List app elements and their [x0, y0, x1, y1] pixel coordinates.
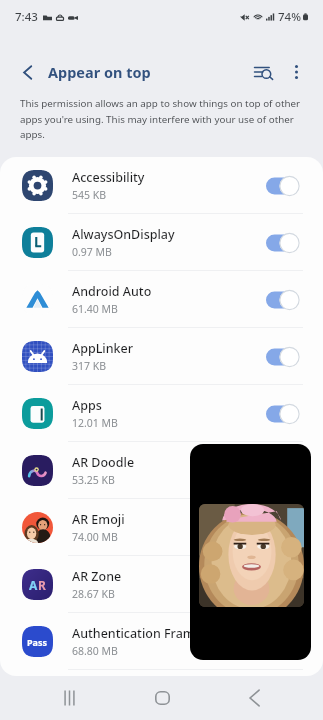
staticText: Android Auto: [72, 283, 152, 300]
button[interactable]: AppLinker: [0, 328, 323, 385]
staticText: AR Emoji: [72, 511, 125, 528]
button[interactable]: Toggle permission: [266, 346, 300, 368]
button[interactable]: Navigate up: [14, 59, 40, 85]
staticText: 0.97 MB: [72, 245, 112, 259]
staticText: 7:43: [15, 9, 38, 25]
button[interactable]: Toggle permission: [266, 403, 300, 425]
staticText: Accessibility: [72, 169, 145, 186]
button[interactable]: Android Auto: [0, 271, 323, 328]
staticText: AppLinker: [72, 340, 134, 357]
staticText: Appear on top: [48, 62, 151, 82]
button[interactable]: AR Doodle: [0, 442, 323, 499]
button[interactable]: Toggle permission: [266, 574, 300, 596]
staticText: 68.80 MB: [72, 644, 118, 658]
staticText: 74%: [278, 9, 301, 25]
button[interactable]: A: [0, 556, 323, 613]
staticText: 12.01 MB: [72, 416, 118, 430]
staticText: 53.25 KB: [72, 473, 115, 487]
button[interactable]: Video call picture in picture: [190, 444, 311, 660]
button[interactable]: Recent apps: [46, 676, 92, 720]
button[interactable]: Toggle permission: [266, 175, 300, 197]
button[interactable]: AlwaysOnDisplay: [0, 214, 323, 271]
staticText: 317 KB: [72, 359, 107, 373]
staticText: Pass: [27, 636, 48, 648]
button[interactable]: Toggle permission: [266, 232, 300, 254]
staticText: Apps: [72, 397, 102, 414]
button[interactable]: Search: [246, 55, 280, 89]
button[interactable]: Home: [139, 676, 185, 720]
button[interactable]: Accessibility: [0, 157, 323, 214]
button[interactable]: Toggle permission: [266, 517, 300, 539]
staticText: 28.67 KB: [72, 587, 115, 601]
button[interactable]: Toggle permission: [266, 289, 300, 311]
button[interactable]: More options: [280, 56, 312, 88]
button[interactable]: Apps: [0, 385, 323, 442]
staticText: AR Doodle: [72, 454, 135, 471]
staticText: A: [29, 577, 38, 593]
staticText: This permission allows an app to show th…: [20, 97, 303, 141]
staticText: R: [38, 577, 46, 593]
staticText: 545 KB: [72, 188, 107, 202]
staticText: Authentication Framework: [72, 625, 232, 642]
button[interactable]: Back: [231, 676, 277, 720]
button[interactable]: Pass: [0, 613, 323, 670]
staticText: 61.40 MB: [72, 302, 118, 316]
button[interactable]: AR Emoji: [0, 499, 323, 556]
staticText: AlwaysOnDisplay: [72, 226, 175, 243]
staticText: 74.00 MB: [72, 530, 118, 544]
staticText: AR Zone: [72, 568, 122, 585]
